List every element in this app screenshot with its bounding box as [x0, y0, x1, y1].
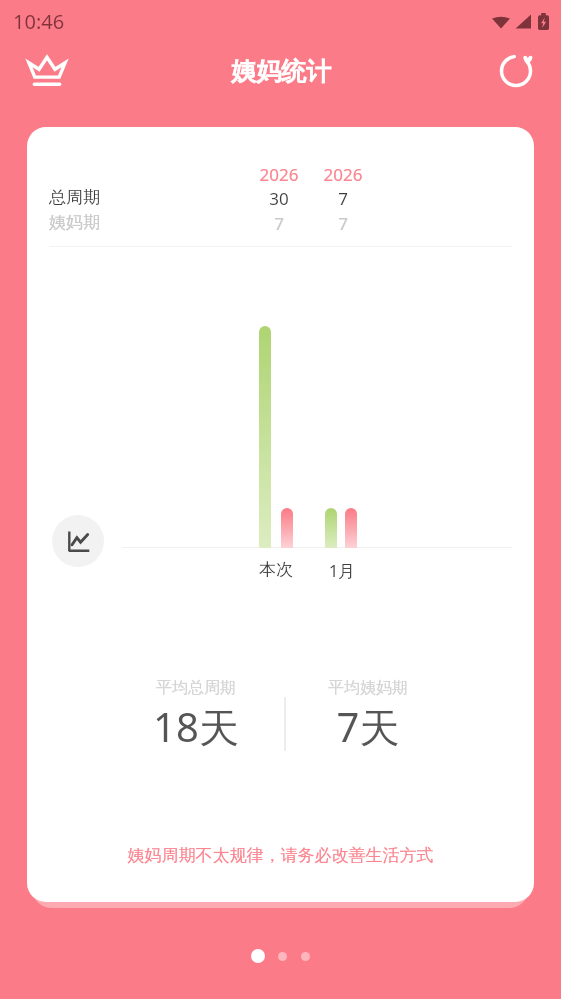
- staticText: 7: [253, 212, 305, 235]
- staticText: 2026: [253, 163, 305, 186]
- staticText: 姨妈周期不太规律，请务必改善生活方式: [27, 845, 534, 866]
- button[interactable]: 2026: [27, 127, 534, 902]
- staticText: 18天: [130, 699, 262, 754]
- button[interactable]: [278, 952, 287, 961]
- staticText: 姨妈统计: [231, 56, 331, 87]
- staticText: 7: [317, 187, 369, 210]
- button[interactable]: VIP crown: [20, 46, 74, 96]
- staticText: 姨妈期: [49, 212, 100, 233]
- staticText: 2026: [317, 163, 369, 186]
- staticText: 1月: [316, 559, 368, 582]
- staticText: 平均总周期: [140, 678, 252, 698]
- button[interactable]: Refresh: [489, 46, 543, 96]
- staticText: 30: [253, 187, 305, 210]
- button[interactable]: [251, 949, 265, 963]
- button[interactable]: Chart type: [52, 515, 104, 567]
- staticText: 7: [317, 212, 369, 235]
- staticText: 7天: [312, 699, 424, 754]
- staticText: 总周期: [49, 187, 100, 208]
- staticText: 平均姨妈期: [312, 678, 424, 698]
- button[interactable]: [301, 952, 310, 961]
- staticText: 10:46: [13, 8, 65, 35]
- staticText: 本次: [250, 559, 302, 580]
